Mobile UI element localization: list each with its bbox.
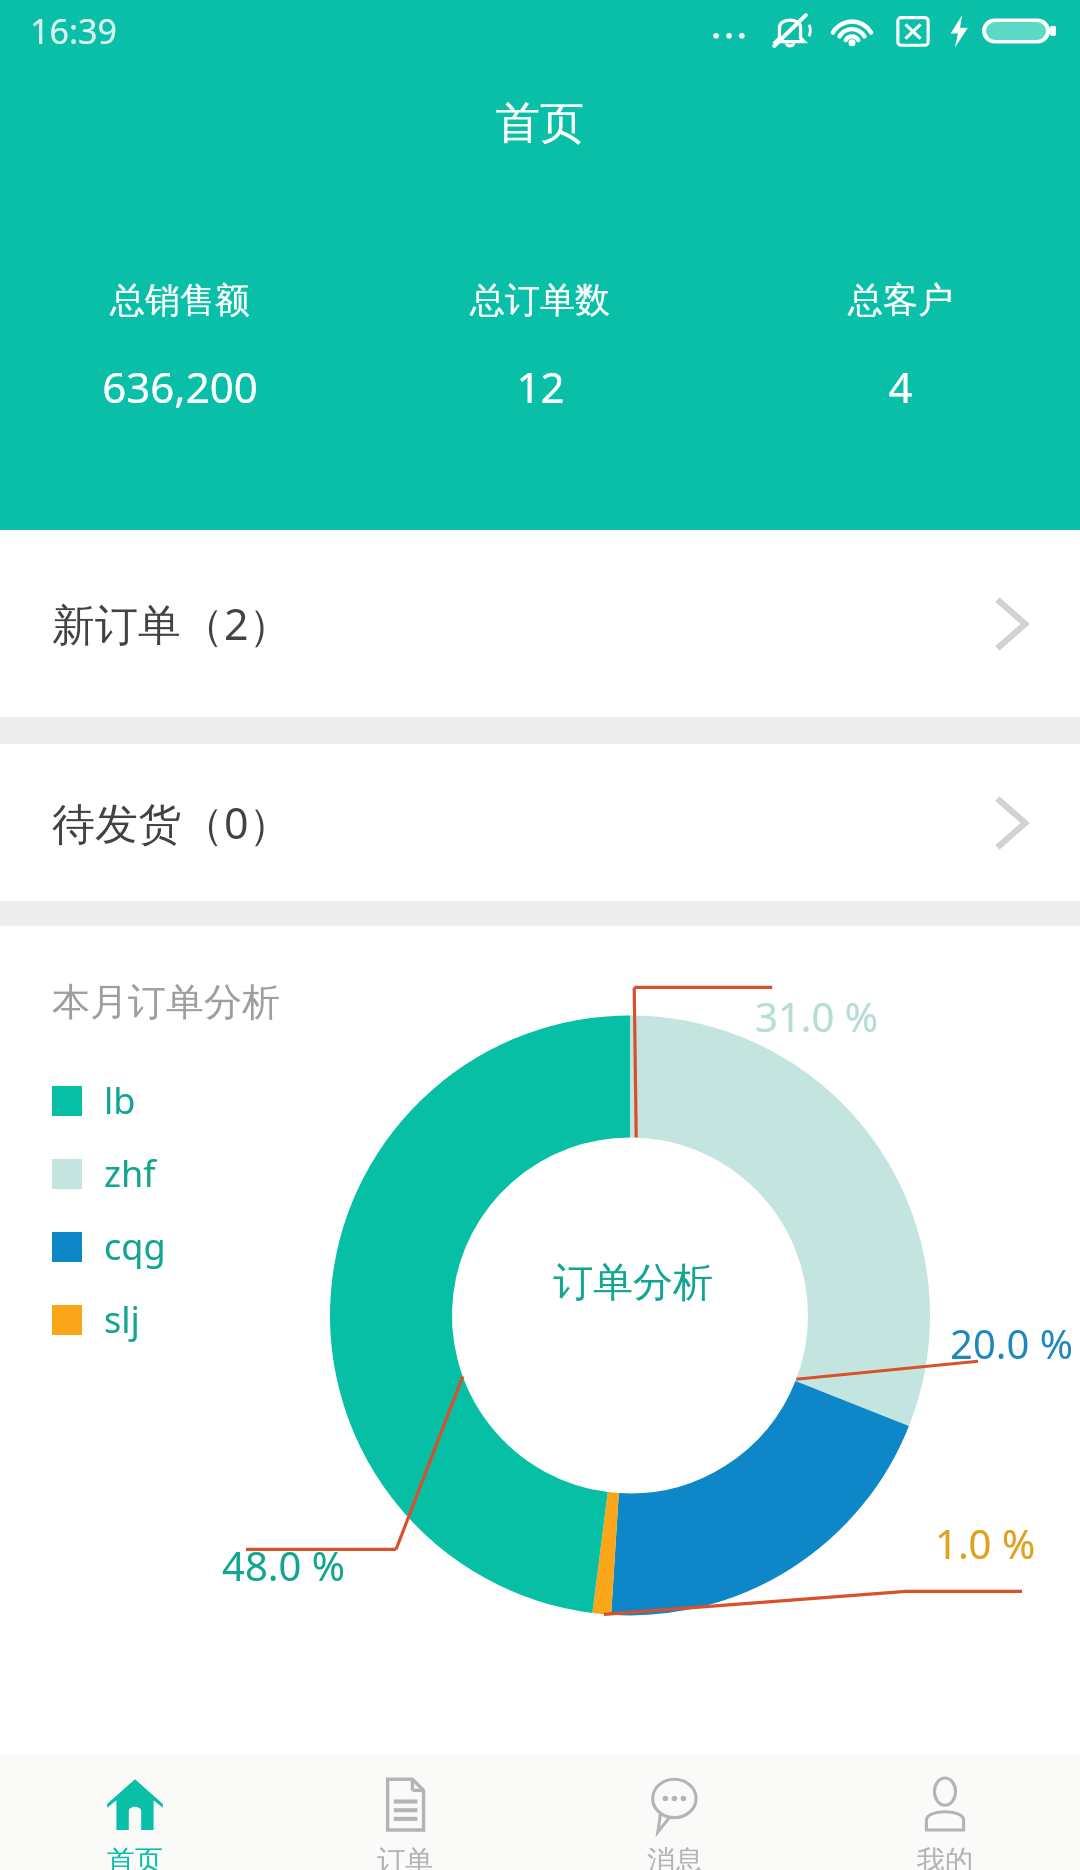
staticText: 4 — [888, 358, 913, 415]
staticText: 新订单（2） — [52, 594, 292, 653]
other: 消息 — [644, 1773, 706, 1835]
staticText: 首页 — [107, 1843, 163, 1870]
staticText: 订单 — [377, 1843, 433, 1870]
staticText: 首页 — [496, 96, 584, 151]
button[interactable]: 待发货（0） — [0, 744, 1080, 901]
staticText: 636,200 — [102, 358, 258, 415]
button[interactable]: zhf — [52, 1149, 156, 1198]
staticText: cqg — [104, 1222, 166, 1271]
other: 订单 — [374, 1773, 436, 1835]
staticText: 本月订单分析 — [52, 978, 280, 1026]
staticText: 20.0 % — [950, 1316, 1073, 1370]
staticText: 16:39 — [30, 8, 117, 54]
button[interactable]: slj — [52, 1295, 140, 1344]
staticText: 消息 — [647, 1843, 703, 1870]
button[interactable]: 新订单（2） — [0, 530, 1080, 717]
staticText: 待发货（0） — [52, 793, 292, 852]
button[interactable]: 订单 — [270, 1755, 540, 1870]
other: 首页 — [104, 1773, 166, 1835]
staticText: 我的 — [917, 1843, 973, 1870]
staticText: 1.0 % — [935, 1516, 1036, 1570]
button[interactable]: cqg — [52, 1222, 166, 1271]
button[interactable]: lb — [52, 1076, 136, 1125]
staticText: 48.0 % — [222, 1538, 345, 1592]
staticText: zhf — [104, 1149, 156, 1198]
staticText: slj — [104, 1295, 140, 1344]
staticText: 12 — [516, 358, 565, 415]
staticText: 总订单数 — [470, 278, 610, 322]
staticText: 31.0 % — [755, 989, 878, 1043]
staticText: 总销售额 — [110, 278, 250, 322]
staticText: lb — [104, 1076, 136, 1125]
button[interactable]: 消息 — [540, 1755, 810, 1870]
button[interactable]: 首页 — [0, 1755, 270, 1870]
staticText: 总客户 — [848, 278, 953, 322]
button[interactable]: 我的 — [810, 1755, 1080, 1870]
staticText: 订单分析 — [553, 1257, 713, 1307]
other: 我的 — [914, 1773, 976, 1835]
